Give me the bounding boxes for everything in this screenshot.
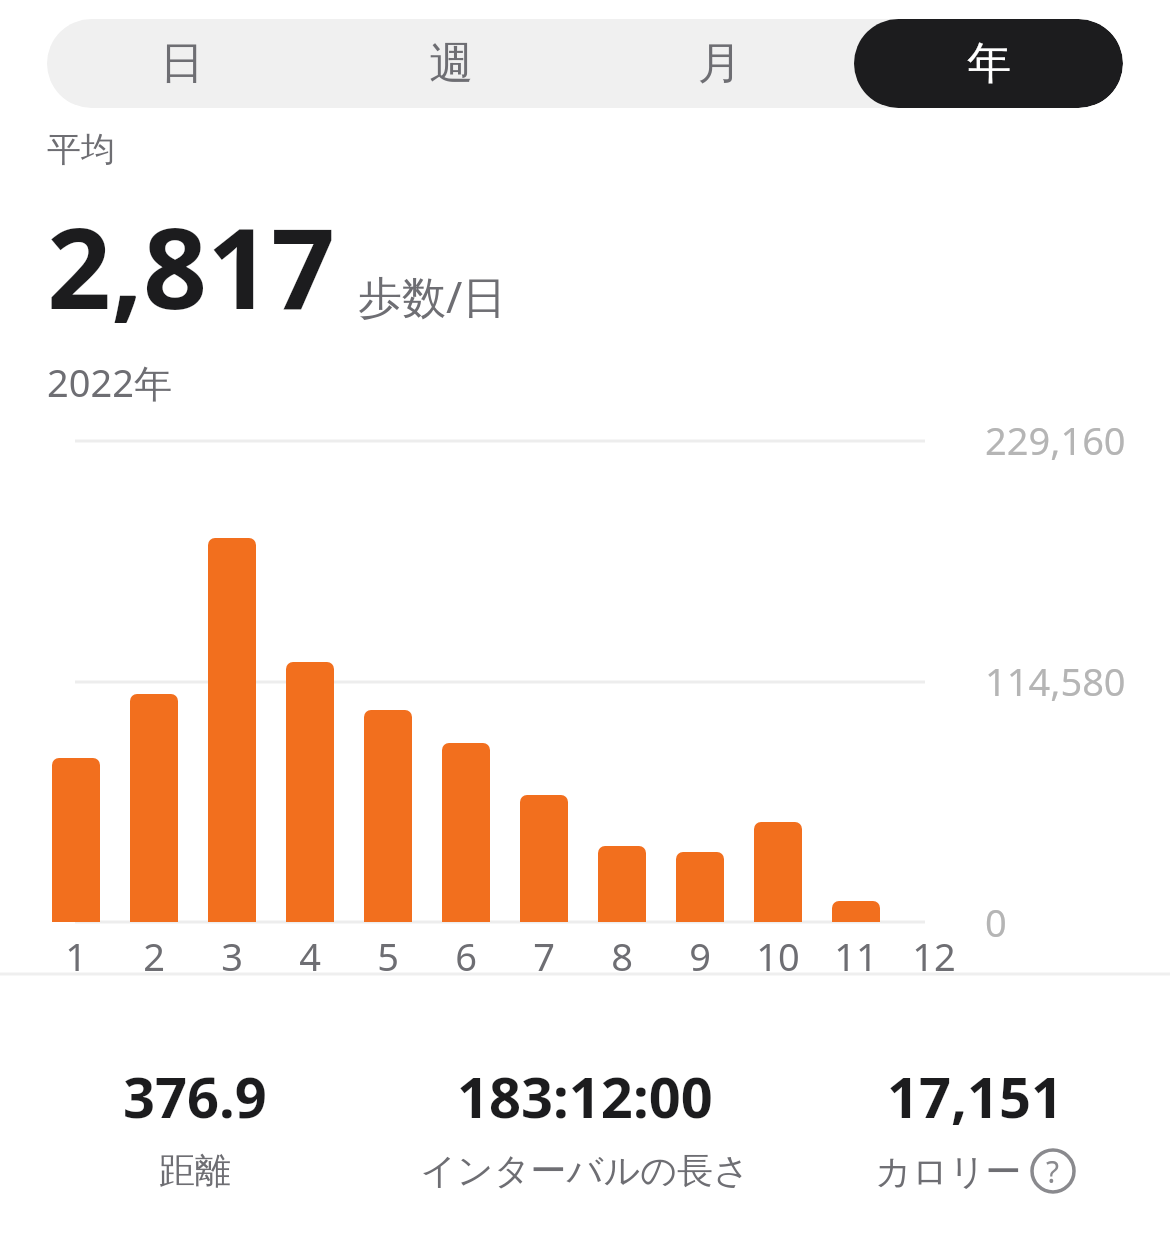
button[interactable]: 週 xyxy=(316,19,585,108)
staticText: 距離 xyxy=(159,1148,231,1193)
button[interactable]: 日 xyxy=(47,19,316,108)
staticText: 平均 xyxy=(47,128,115,171)
staticText: 週 xyxy=(429,36,473,91)
staticText: 229,160 xyxy=(985,414,1126,466)
staticText: 歩数/日 xyxy=(358,266,507,326)
staticText: 年 xyxy=(967,36,1011,91)
staticText: ? xyxy=(1046,1151,1060,1192)
staticText: 9 xyxy=(689,930,711,982)
staticText: 2 xyxy=(143,930,165,982)
staticText: 10 xyxy=(756,930,800,982)
staticText: 183:12:00 xyxy=(457,1058,713,1134)
staticText: 8 xyxy=(611,930,633,982)
staticText: 2022年 xyxy=(47,356,172,408)
staticText: 12 xyxy=(912,930,956,982)
button[interactable]: 376.9 xyxy=(0,1058,390,1193)
button[interactable]: 183:12:00 xyxy=(390,1058,780,1193)
staticText: インターバルの長さ xyxy=(420,1148,750,1193)
button[interactable]: 年 xyxy=(854,19,1123,108)
staticText: 1 xyxy=(65,930,87,982)
staticText: 3 xyxy=(221,930,243,982)
staticText: 114,580 xyxy=(985,655,1126,707)
staticText: 5 xyxy=(377,930,399,982)
staticText: 2,817 xyxy=(47,189,336,342)
staticText: 17,151 xyxy=(887,1058,1064,1134)
staticText: 月 xyxy=(698,36,742,91)
button[interactable]: 17,151 xyxy=(780,1058,1170,1194)
button[interactable]: カロリーについてのヘルプ xyxy=(1030,1148,1076,1194)
staticText: 4 xyxy=(299,930,321,982)
staticText: 376.9 xyxy=(123,1058,267,1134)
staticText: 6 xyxy=(455,930,477,982)
button[interactable]: 月 xyxy=(585,19,854,108)
staticText: 日 xyxy=(160,36,204,91)
staticText: 11 xyxy=(834,930,878,982)
staticText: 0 xyxy=(985,896,1007,948)
staticText: カロリー xyxy=(875,1149,1022,1194)
staticText: 7 xyxy=(533,930,555,982)
